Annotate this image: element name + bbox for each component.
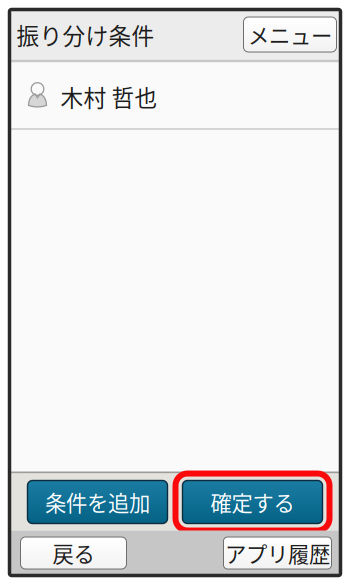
button[interactable]: メニュー [243, 17, 336, 52]
staticText: アプリ履歴 [225, 538, 330, 568]
staticText: 確定する [210, 487, 294, 517]
staticText: 木村 哲也 [60, 80, 157, 113]
button[interactable]: 戻る [20, 537, 126, 569]
staticText: 戻る [52, 538, 94, 568]
button[interactable]: 条件を追加 [27, 480, 167, 523]
staticText: 振り分け条件 [16, 18, 154, 51]
button[interactable]: 木村 哲也 [9, 62, 340, 128]
staticText: メニュー [248, 19, 332, 50]
button[interactable]: アプリ履歴 [223, 537, 331, 569]
button[interactable]: 確定する [175, 473, 329, 530]
staticText: 条件を追加 [45, 487, 150, 517]
